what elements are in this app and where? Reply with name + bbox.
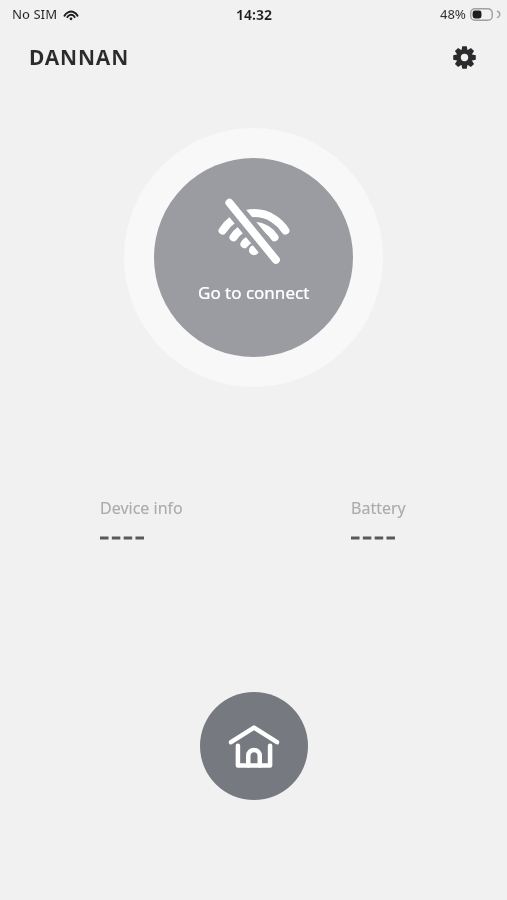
- staticText: Battery: [351, 497, 406, 519]
- button[interactable]: Settings: [446, 39, 482, 75]
- staticText: Go to connect: [198, 281, 310, 304]
- button[interactable]: Go to connect: [154, 158, 353, 357]
- staticText: No SIM: [12, 5, 58, 23]
- staticText: Device info: [100, 497, 183, 519]
- staticText: DANNAN: [29, 43, 130, 72]
- staticText: 48%: [440, 5, 466, 23]
- staticText: 14:32: [236, 5, 272, 24]
- button[interactable]: Home: [200, 692, 308, 800]
